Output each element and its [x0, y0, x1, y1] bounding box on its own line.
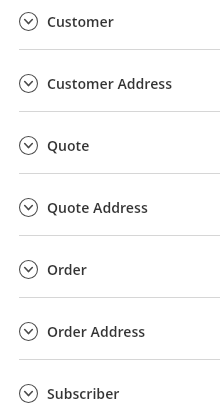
button[interactable]: Subscriber — [0, 372, 220, 415]
staticText: Customer Address — [47, 74, 173, 93]
button[interactable]: Customer — [0, 0, 220, 43]
button[interactable]: Quote Address — [0, 186, 220, 229]
staticText: Order — [47, 260, 87, 279]
button[interactable]: Order — [0, 248, 220, 291]
staticText: Quote — [47, 136, 90, 155]
button[interactable]: Customer Address — [0, 62, 220, 105]
button[interactable]: Quote — [0, 124, 220, 167]
staticText: Order Address — [47, 322, 146, 341]
staticText: Quote Address — [47, 198, 148, 217]
staticText: Subscriber — [47, 384, 120, 403]
staticText: Customer — [47, 12, 114, 31]
button[interactable]: Order Address — [0, 310, 220, 353]
